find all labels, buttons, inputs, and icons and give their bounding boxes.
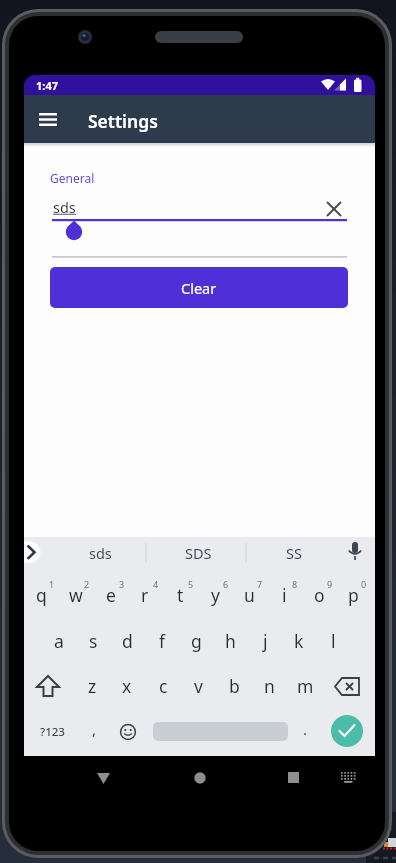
staticText: 1 bbox=[49, 578, 55, 590]
staticText: p bbox=[348, 583, 359, 607]
button[interactable]: n bbox=[199, 666, 339, 706]
button[interactable]: y bbox=[145, 575, 285, 615]
staticText: x bbox=[122, 674, 132, 698]
button[interactable]: sds bbox=[30, 533, 170, 573]
button[interactable]: Clear bbox=[50, 267, 348, 308]
staticText: 8 bbox=[292, 578, 298, 590]
button[interactable]: r bbox=[75, 575, 215, 615]
button[interactable] bbox=[278, 762, 309, 793]
button[interactable]: SDS bbox=[128, 533, 268, 573]
staticText: Settings bbox=[88, 109, 158, 133]
staticText: v bbox=[194, 674, 203, 698]
button[interactable]: t bbox=[110, 575, 250, 615]
button[interactable] bbox=[331, 671, 363, 703]
staticText: sds bbox=[53, 197, 76, 217]
button[interactable]: z bbox=[24, 666, 162, 706]
staticText: n bbox=[264, 674, 275, 698]
staticText: w bbox=[69, 583, 83, 607]
staticText: e bbox=[106, 583, 116, 607]
staticText: f bbox=[159, 629, 166, 653]
button[interactable]: w bbox=[24, 575, 146, 615]
staticText: SDS bbox=[185, 543, 212, 563]
staticText: . bbox=[303, 719, 308, 739]
button[interactable] bbox=[112, 716, 144, 748]
staticText: m bbox=[297, 674, 314, 698]
button[interactable]: o bbox=[249, 575, 375, 615]
button[interactable]: d bbox=[57, 621, 197, 661]
button[interactable]: . bbox=[235, 709, 375, 749]
staticText: ?123 bbox=[40, 724, 65, 740]
button[interactable]: i bbox=[214, 575, 354, 615]
button[interactable] bbox=[318, 192, 350, 224]
staticText: , bbox=[92, 719, 97, 739]
button[interactable]: p bbox=[283, 575, 375, 615]
button[interactable]: e bbox=[41, 575, 181, 615]
button[interactable]: k bbox=[229, 621, 369, 661]
button[interactable]: x bbox=[57, 666, 197, 706]
staticText: a bbox=[54, 629, 64, 653]
button[interactable]: ?123 bbox=[24, 712, 122, 752]
staticText: 6 bbox=[223, 578, 229, 590]
staticText: 0 bbox=[361, 578, 367, 590]
staticText: 5 bbox=[188, 578, 194, 590]
staticText: b bbox=[229, 674, 240, 698]
staticText: 4 bbox=[153, 578, 159, 590]
staticText: t bbox=[177, 583, 184, 607]
button[interactable]: , bbox=[24, 709, 164, 749]
button[interactable]: j bbox=[195, 621, 335, 661]
staticText: 3 bbox=[119, 578, 125, 590]
staticText: Clear bbox=[181, 278, 217, 298]
staticText: g bbox=[191, 629, 202, 653]
staticText: c bbox=[159, 674, 168, 698]
button[interactable]: g bbox=[126, 621, 266, 661]
button[interactable]: u bbox=[179, 575, 319, 615]
button[interactable] bbox=[88, 762, 119, 793]
button[interactable]: q bbox=[24, 575, 111, 615]
staticText: d bbox=[122, 629, 133, 653]
staticText: o bbox=[314, 583, 325, 607]
button[interactable] bbox=[32, 671, 64, 703]
staticText: y bbox=[211, 583, 220, 607]
button[interactable]: m bbox=[235, 666, 375, 706]
staticText: 1:47 bbox=[36, 78, 58, 93]
staticText: 7 bbox=[257, 578, 263, 590]
staticText: SS bbox=[286, 543, 302, 563]
staticText: sds bbox=[89, 543, 112, 563]
button[interactable] bbox=[184, 762, 215, 793]
staticText: k bbox=[294, 629, 304, 653]
staticText: General bbox=[50, 170, 95, 186]
staticText: z bbox=[88, 674, 97, 698]
button[interactable]: f bbox=[92, 621, 232, 661]
staticText: q bbox=[36, 583, 47, 607]
button[interactable] bbox=[331, 715, 363, 747]
staticText: h bbox=[225, 629, 236, 653]
button[interactable]: l bbox=[263, 621, 375, 661]
button[interactable] bbox=[336, 765, 362, 791]
button[interactable]: b bbox=[164, 666, 304, 706]
staticText: i bbox=[282, 583, 287, 607]
staticText: j bbox=[263, 629, 268, 653]
staticText: 9 bbox=[327, 578, 333, 590]
staticText: 2 bbox=[84, 578, 90, 590]
button[interactable]: s bbox=[24, 621, 163, 661]
button[interactable]: c bbox=[93, 666, 233, 706]
button[interactable]: h bbox=[160, 621, 300, 661]
button[interactable] bbox=[32, 103, 64, 135]
staticText: u bbox=[244, 583, 255, 607]
button[interactable]: a bbox=[24, 621, 129, 661]
staticText: s bbox=[89, 629, 98, 653]
button[interactable]: SS bbox=[224, 533, 364, 573]
button[interactable]: v bbox=[128, 666, 268, 706]
staticText: r bbox=[141, 583, 149, 607]
staticText: l bbox=[331, 629, 336, 653]
